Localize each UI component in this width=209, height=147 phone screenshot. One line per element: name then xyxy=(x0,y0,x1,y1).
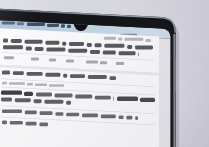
button[interactable]: Phone displaying an article screen xyxy=(0,0,209,147)
